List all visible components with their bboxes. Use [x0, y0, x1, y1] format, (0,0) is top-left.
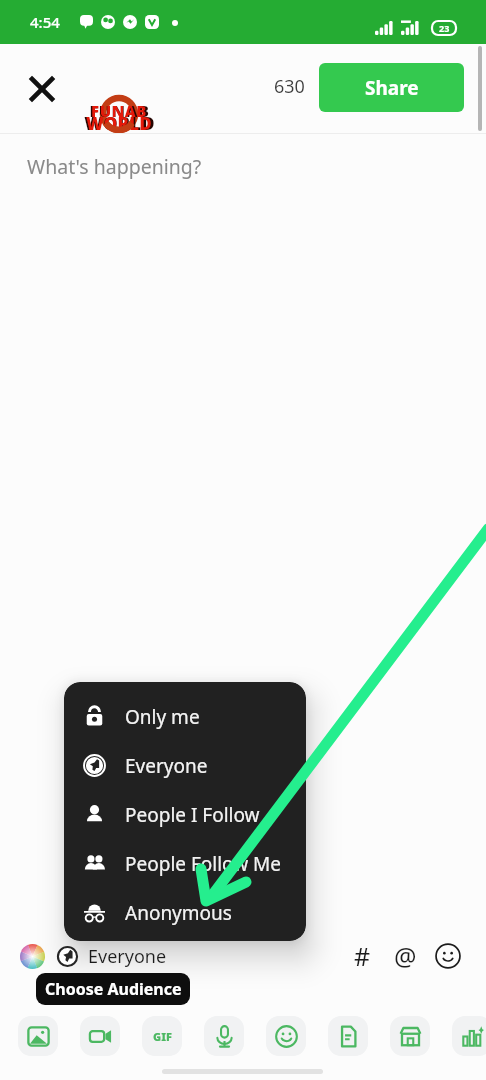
staticText: What's happening? — [27, 153, 202, 180]
staticText: 4:54 — [30, 12, 60, 32]
staticText: People Follow Me — [125, 851, 282, 877]
button[interactable]: Audio — [204, 1016, 244, 1056]
button[interactable]: Emoji — [430, 938, 466, 974]
button[interactable]: GIF — [142, 1016, 182, 1056]
staticText: @ — [394, 939, 417, 973]
button[interactable]: People I Follow — [64, 790, 306, 839]
staticText: 630 — [274, 74, 305, 99]
button[interactable]: Choose Audience — [36, 973, 190, 1005]
staticText: # — [354, 939, 371, 973]
button[interactable]: Video — [80, 1016, 120, 1056]
button[interactable]: Document — [328, 1016, 368, 1056]
button[interactable]: Close — [24, 71, 60, 107]
staticText: FUNAB — [91, 101, 147, 121]
staticText: 23 — [439, 22, 450, 34]
button[interactable]: Photo — [18, 1016, 58, 1056]
button[interactable]: Mention — [387, 938, 423, 974]
button[interactable]: Anonymous — [64, 888, 306, 937]
button[interactable]: Hashtag — [344, 938, 380, 974]
staticText: WORLD — [86, 112, 152, 135]
staticText: Choose Audience — [45, 978, 182, 1000]
button[interactable]: People Follow Me — [64, 839, 306, 888]
button[interactable]: Share — [319, 63, 464, 112]
button[interactable]: Store — [390, 1016, 430, 1056]
staticText: Everyone — [88, 944, 167, 969]
staticText: GIF — [153, 1029, 172, 1044]
button[interactable]: Sticker — [266, 1016, 306, 1056]
staticText: FUNAB — [89, 100, 150, 122]
staticText: Anonymous — [125, 900, 232, 926]
button[interactable]: Everyone — [64, 741, 306, 790]
button[interactable]: Everyone — [57, 944, 167, 969]
staticText: Share — [365, 75, 419, 101]
staticText: Everyone — [125, 753, 208, 779]
button[interactable]: Poll — [452, 1016, 486, 1056]
button[interactable]: Only me — [64, 692, 306, 741]
staticText: WORLD — [84, 111, 155, 136]
staticText: People I Follow — [125, 802, 260, 828]
staticText: Only me — [125, 704, 200, 730]
